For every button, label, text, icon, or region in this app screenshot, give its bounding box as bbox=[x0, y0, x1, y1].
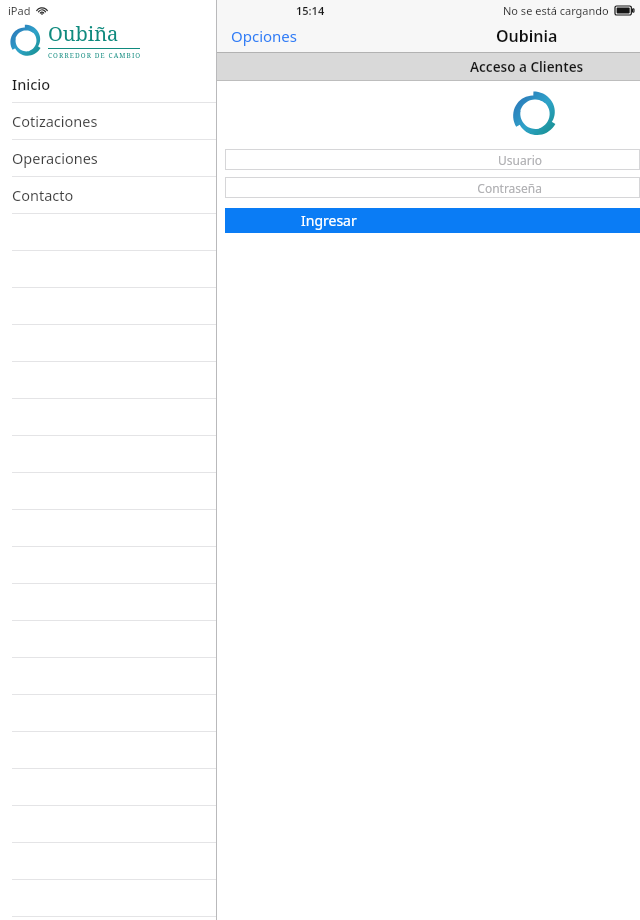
staticText: Usuario bbox=[498, 152, 542, 168]
staticText: 15:14 bbox=[296, 3, 325, 18]
staticText: No se está cargando bbox=[503, 3, 609, 18]
button[interactable]: Operaciones bbox=[0, 140, 216, 177]
staticText: Oubiña bbox=[48, 20, 119, 47]
staticText: Inicio bbox=[12, 74, 51, 94]
staticText: Oubinia bbox=[496, 25, 558, 47]
button[interactable]: Ingresar bbox=[225, 208, 640, 233]
button[interactable]: Usuario bbox=[225, 149, 640, 170]
button[interactable]: Contraseña bbox=[225, 177, 640, 198]
staticText: Ingresar bbox=[301, 211, 357, 230]
staticText: Acceso a Clientes bbox=[470, 58, 584, 76]
button[interactable]: Opciones bbox=[227, 22, 302, 50]
button[interactable]: Contacto bbox=[0, 177, 216, 214]
staticText: CORREDOR DE CAMBIO bbox=[48, 51, 142, 60]
staticText: Contraseña bbox=[477, 180, 542, 196]
button[interactable]: Inicio bbox=[0, 66, 216, 103]
staticText: Cotizaciones bbox=[12, 111, 98, 131]
staticText: iPad bbox=[8, 3, 31, 18]
staticText: Opciones bbox=[231, 26, 298, 46]
button[interactable]: Cotizaciones bbox=[0, 103, 216, 140]
staticText: Operaciones bbox=[12, 148, 98, 168]
staticText: Contacto bbox=[12, 185, 74, 205]
